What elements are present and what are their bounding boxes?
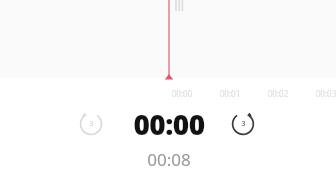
button[interactable]: 00:08: [119, 146, 219, 172]
staticText: 00:00: [164, 88, 200, 99]
staticText: 00:03: [308, 88, 336, 99]
button[interactable]: Rewind 3 seconds: [78, 111, 104, 137]
staticText: 00:00: [119, 105, 219, 143]
staticText: 3: [89, 119, 94, 129]
button[interactable]: Forward 3 seconds: [230, 111, 256, 137]
staticText: 00:02: [260, 88, 296, 99]
staticText: 00:01: [212, 88, 248, 99]
staticText: 3: [241, 119, 246, 129]
staticText: 00:08: [119, 148, 219, 171]
button[interactable]: 00:00: [119, 105, 219, 143]
